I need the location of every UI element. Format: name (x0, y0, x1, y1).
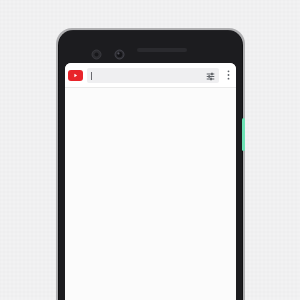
button[interactable]: YouTube (68, 70, 83, 81)
button[interactable]: Search (87, 68, 219, 83)
button[interactable]: Power button (242, 118, 245, 151)
button[interactable]: Search filters (205, 71, 215, 81)
button[interactable]: More options (222, 65, 234, 85)
